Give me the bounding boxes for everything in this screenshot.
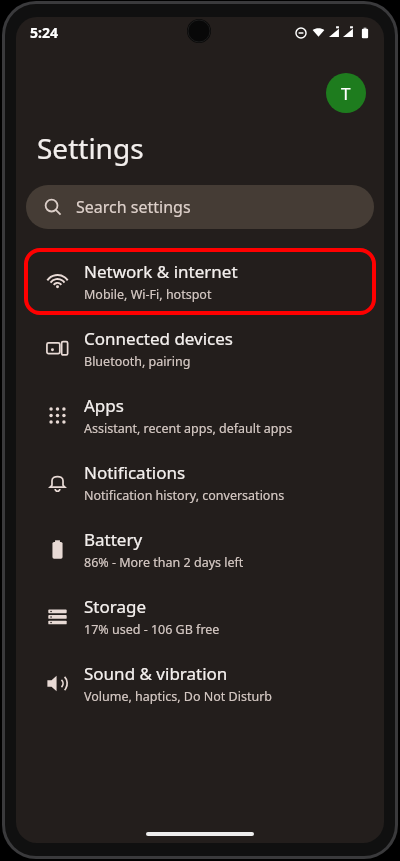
staticText: Search settings	[76, 196, 191, 218]
button[interactable]: Account	[326, 73, 366, 113]
button[interactable]: Search settings	[26, 185, 374, 229]
staticText: T	[341, 82, 351, 105]
staticText: Volume, haptics, Do Not Disturb	[84, 688, 273, 705]
staticText: Notifications	[84, 461, 186, 484]
button[interactable]: Network & internet	[24, 248, 376, 315]
button[interactable]: Apps	[24, 382, 376, 449]
button[interactable]: Sound & vibration	[24, 650, 376, 717]
staticText: Settings	[37, 129, 144, 167]
staticText: Connected devices	[84, 327, 234, 350]
staticText: Battery	[84, 528, 143, 551]
button[interactable]: Storage	[24, 583, 376, 650]
staticText: Apps	[84, 394, 124, 417]
staticText: Sound & vibration	[84, 662, 228, 685]
button[interactable]: Battery	[24, 516, 376, 583]
staticText: 17% used - 106 GB free	[84, 621, 220, 638]
staticText: Notification history, conversations	[84, 487, 285, 504]
button[interactable]: Connected devices	[24, 315, 376, 382]
staticText: Storage	[84, 595, 147, 618]
staticText: Network & internet	[84, 260, 238, 283]
staticText: 86% - More than 2 days left	[84, 554, 244, 571]
staticText: Bluetooth, pairing	[84, 353, 191, 370]
staticText: Assistant, recent apps, default apps	[84, 420, 293, 437]
staticText: 5:24	[30, 23, 58, 42]
staticText: Mobile, Wi-Fi, hotspot	[84, 286, 212, 303]
button[interactable]: Notifications	[24, 449, 376, 516]
